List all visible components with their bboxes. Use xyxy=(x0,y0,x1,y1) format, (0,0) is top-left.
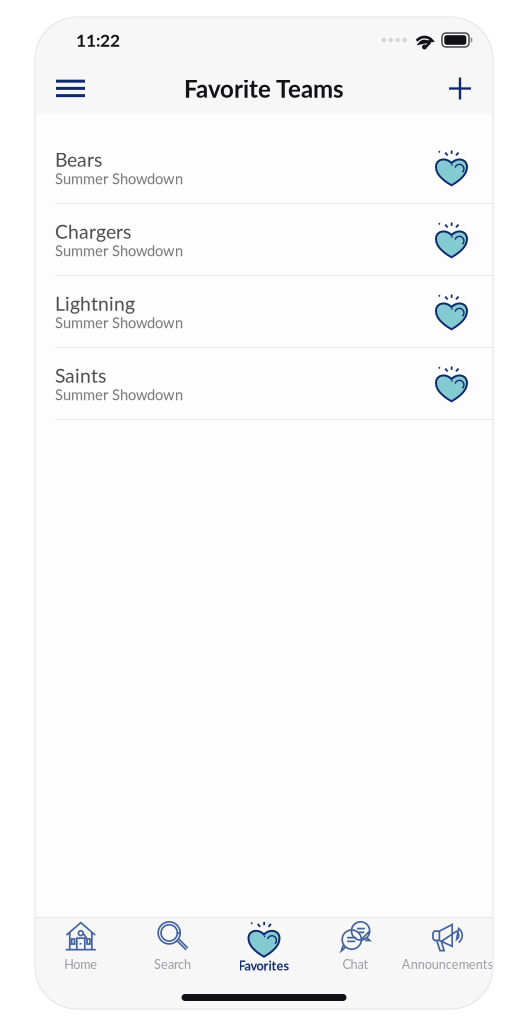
staticText: Summer Showdown xyxy=(55,386,183,403)
button[interactable]: Favorites xyxy=(218,918,310,974)
staticText: Summer Showdown xyxy=(55,242,183,259)
staticText: Summer Showdown xyxy=(55,170,183,187)
button[interactable]: Announcements xyxy=(401,918,493,974)
button[interactable]: Home xyxy=(35,918,127,974)
button[interactable]: Add xyxy=(440,66,480,110)
button[interactable]: Chargers xyxy=(35,204,493,276)
staticText: Announcements xyxy=(402,956,493,972)
staticText: Home xyxy=(64,956,97,972)
button[interactable]: Search xyxy=(127,918,218,974)
button[interactable]: Menu xyxy=(47,67,94,110)
staticText: Lightning xyxy=(55,292,135,315)
staticText: Favorites xyxy=(238,958,289,973)
staticText: Favorite Teams xyxy=(184,74,344,103)
button[interactable]: Chat xyxy=(310,918,401,974)
staticText: Chargers xyxy=(55,220,131,243)
staticText: Bears xyxy=(55,148,102,171)
button[interactable]: Lightning xyxy=(35,276,493,348)
staticText: 11:22 xyxy=(76,30,120,50)
staticText: Summer Showdown xyxy=(55,314,183,331)
staticText: Chat xyxy=(343,956,369,972)
staticText: Saints xyxy=(55,364,106,387)
button[interactable]: Bears xyxy=(35,132,493,204)
button[interactable]: Saints xyxy=(35,348,493,420)
staticText: Search xyxy=(154,956,191,972)
